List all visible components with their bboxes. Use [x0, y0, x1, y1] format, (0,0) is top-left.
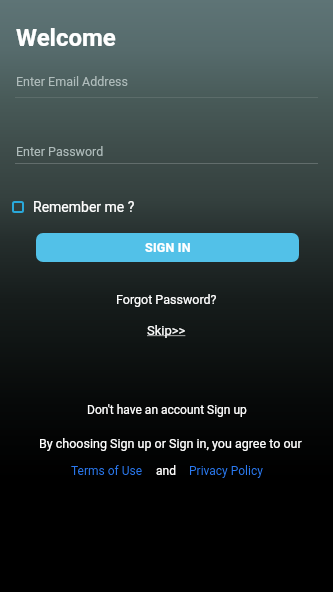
button[interactable]: Don't have an account Sign up: [87, 403, 247, 417]
staticText: and: [156, 464, 176, 478]
button[interactable]: SIGN IN: [36, 233, 299, 262]
staticText: By choosing Sign up or Sign in, you agre…: [39, 436, 302, 451]
button[interactable]: Remember me ?: [12, 199, 135, 215]
staticText: Enter Password: [16, 144, 104, 159]
button[interactable]: Enter Password: [15, 141, 318, 164]
staticText: Enter Email Address: [16, 74, 129, 89]
button[interactable]: Terms of Use: [71, 464, 143, 478]
button[interactable]: Enter Email Address: [15, 70, 318, 98]
button[interactable]: Forgot Password?: [116, 292, 217, 307]
button[interactable]: Skip>>: [147, 323, 186, 338]
staticText: Remember me ?: [33, 199, 135, 215]
staticText: Welcome: [16, 24, 116, 52]
button[interactable]: Privacy Policy: [189, 464, 263, 478]
staticText: SIGN IN: [145, 240, 191, 255]
